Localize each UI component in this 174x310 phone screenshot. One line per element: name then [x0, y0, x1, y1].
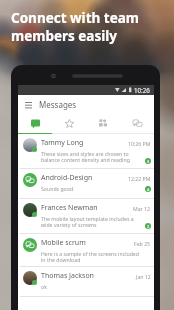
staticText: 4	[147, 187, 150, 192]
staticText: members easily	[11, 27, 117, 45]
staticText: Android-Design	[41, 173, 93, 183]
staticText: The mobile layout template includes a wi…	[41, 215, 143, 229]
staticText: These sizes and styles are chosen to bal…	[41, 150, 143, 164]
button[interactable]: Starred	[52, 114, 86, 133]
staticText: Sounds good	[41, 185, 143, 192]
staticText: 10:26 PM	[128, 140, 151, 147]
staticText: 2	[147, 224, 150, 229]
staticText: Connect with team	[11, 9, 139, 27]
staticText: Here is a sample of the screens included…	[41, 250, 143, 264]
staticText: Frances Newman	[41, 203, 98, 213]
button[interactable]: Frances Newman	[18, 199, 154, 233]
staticText: Mobile scrum	[41, 238, 86, 248]
staticText: Feb 25	[134, 240, 151, 247]
button[interactable]: Thomas Jackson	[18, 267, 154, 296]
button[interactable]: Android-Design	[18, 169, 154, 198]
staticText: 12:22 PM	[128, 175, 151, 182]
staticText: Tammy Long	[41, 138, 84, 148]
staticText: Mar 12	[133, 205, 151, 212]
staticText: Thomas Jackson	[41, 271, 94, 281]
button[interactable]: Chats	[18, 114, 52, 133]
button[interactable]: Rooms	[120, 114, 154, 133]
staticText: 10:26	[134, 86, 150, 94]
staticText: Messages	[39, 99, 77, 110]
button[interactable]: Contacts	[86, 114, 120, 133]
button[interactable]: Tammy Long	[18, 134, 154, 168]
button[interactable]: Mobile scrum	[18, 234, 154, 266]
staticText: ok	[41, 283, 143, 290]
button[interactable]: Open navigation menu	[21, 98, 35, 112]
staticText: Jan 12	[136, 273, 151, 280]
staticText: 3	[147, 159, 150, 164]
